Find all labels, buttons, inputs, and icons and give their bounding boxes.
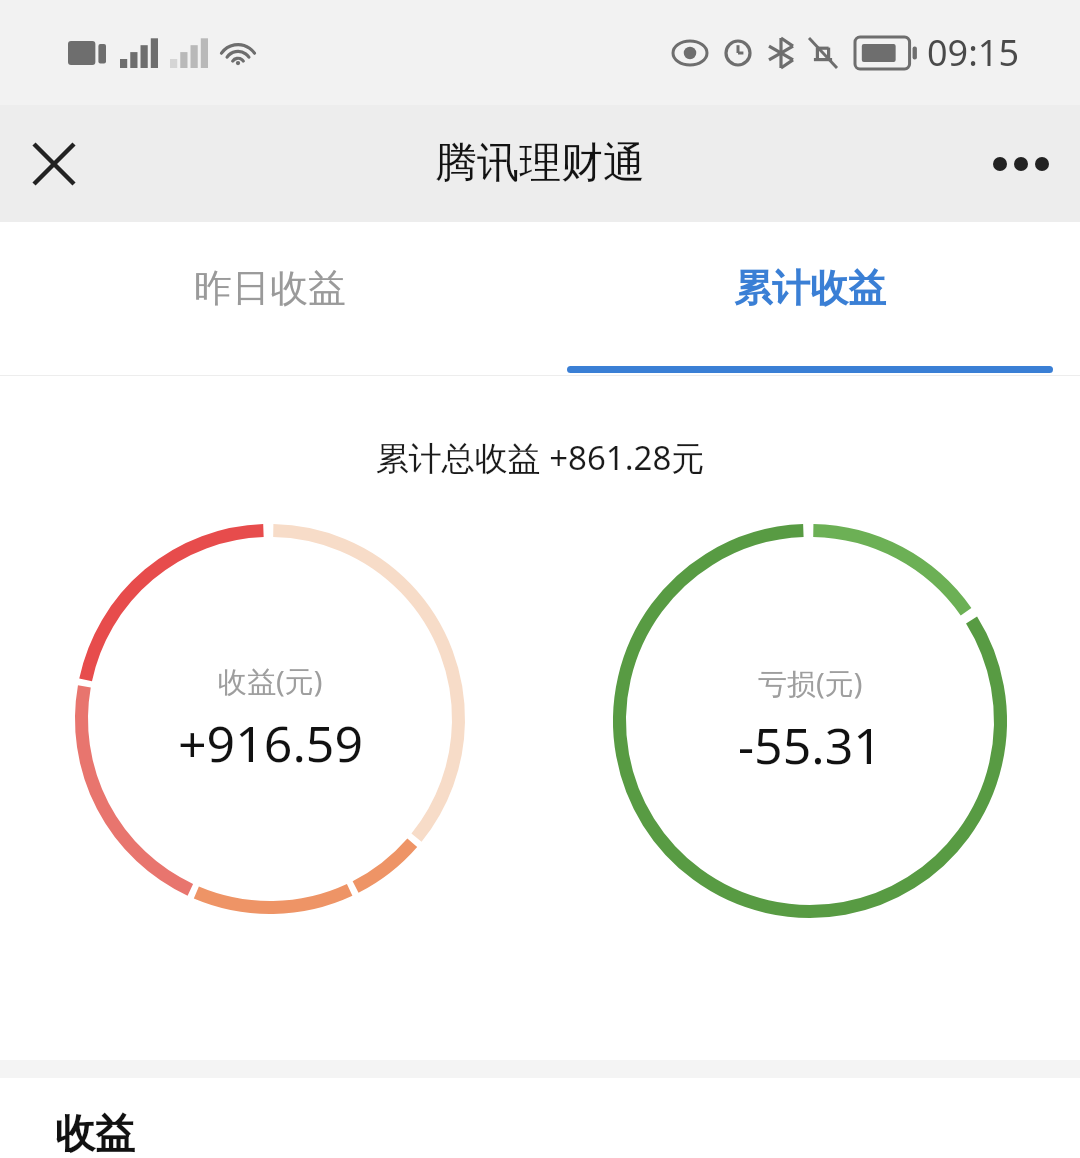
staticText: -55.31 xyxy=(738,711,882,779)
staticText: 累计总收益 +861.28元 xyxy=(0,435,1080,480)
staticText: +916.59 xyxy=(178,709,363,777)
button[interactable]: 昨日收益 xyxy=(0,222,540,375)
button[interactable]: Close xyxy=(20,130,88,198)
staticText: 累计收益 xyxy=(734,264,886,312)
button[interactable]: 累计收益 xyxy=(540,222,1080,375)
staticText: 09:15 xyxy=(927,28,1020,77)
button[interactable]: More options xyxy=(986,129,1056,199)
staticText: 收益(元) xyxy=(218,661,323,701)
staticText: 昨日收益 xyxy=(194,264,346,312)
staticText: 亏损(元) xyxy=(758,663,863,703)
staticText: 腾讯理财通 xyxy=(435,137,645,190)
staticText: 收益 xyxy=(55,1108,135,1158)
